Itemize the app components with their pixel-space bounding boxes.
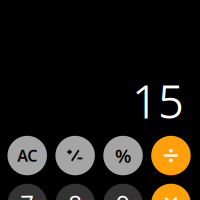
button[interactable]: Divide xyxy=(151,136,191,175)
button[interactable]: Plus Minus xyxy=(55,136,95,175)
button[interactable]: AC xyxy=(7,136,47,175)
button[interactable]: Multiply xyxy=(151,184,191,200)
button[interactable]: % xyxy=(103,136,143,175)
staticText: 8 xyxy=(68,187,82,200)
staticText: AC xyxy=(17,145,37,166)
button[interactable]: 8 xyxy=(55,184,95,200)
staticText: % xyxy=(115,143,131,168)
staticText: 7 xyxy=(20,187,34,200)
staticText: 15 xyxy=(132,70,184,132)
button[interactable]: 9 xyxy=(103,184,143,200)
button[interactable]: 7 xyxy=(7,184,47,200)
staticText: 9 xyxy=(116,187,130,200)
